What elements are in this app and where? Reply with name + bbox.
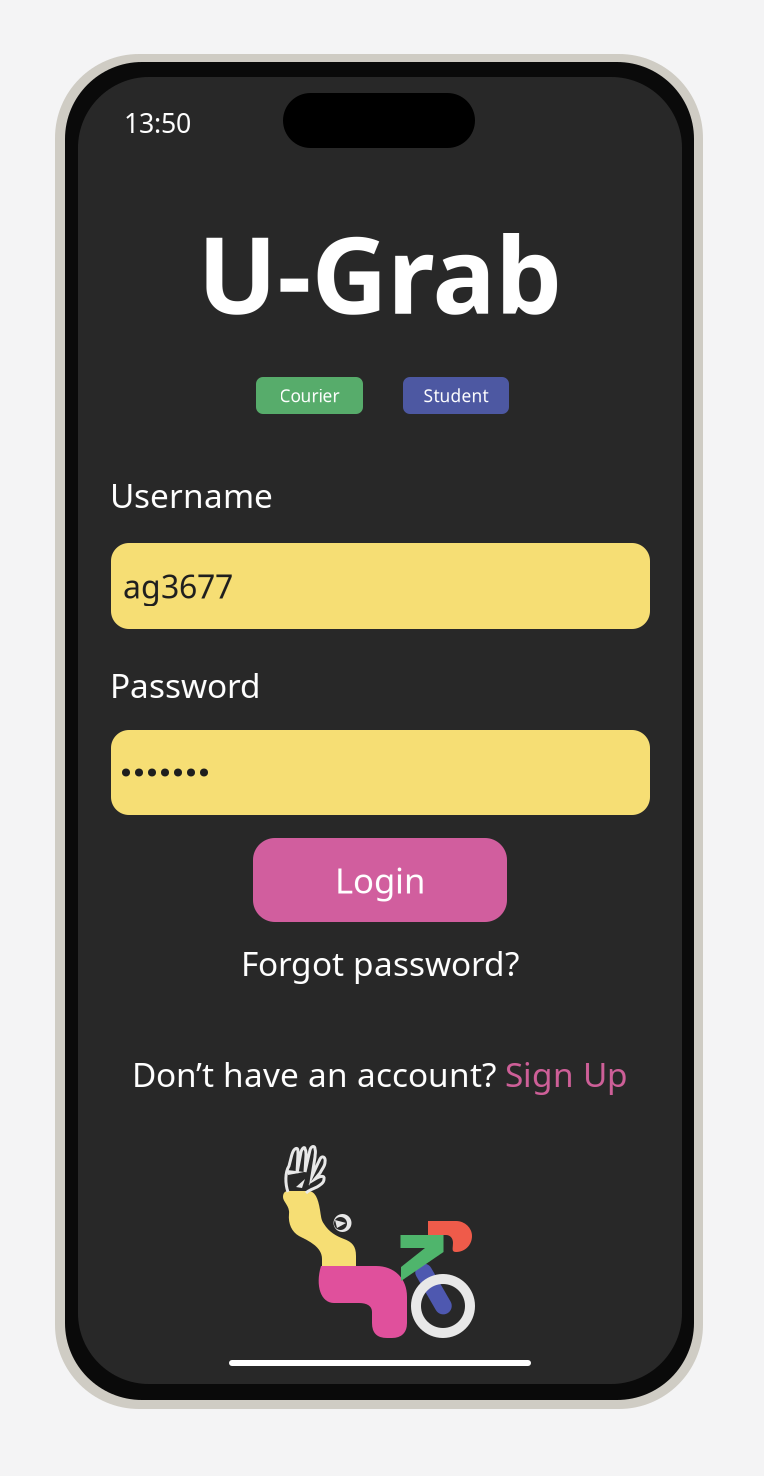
button[interactable]: Student <box>403 377 509 414</box>
staticText: 13:50 <box>124 105 191 140</box>
staticText: Don’t have an account? <box>132 1052 505 1096</box>
staticText: Student <box>423 384 488 407</box>
staticText: Password <box>110 663 261 707</box>
button[interactable]: Courier <box>256 377 363 414</box>
button[interactable]: Sign Up <box>505 1052 628 1096</box>
staticText: Courier <box>279 384 339 407</box>
button[interactable]: Forgot password? <box>78 941 682 985</box>
staticText: U-Grab <box>197 203 562 343</box>
staticText: Sign Up <box>505 1052 628 1096</box>
staticText: Login <box>335 857 425 903</box>
staticText: Forgot password? <box>241 941 519 985</box>
staticText: ag3677 <box>123 565 233 607</box>
staticText: Username <box>110 473 273 517</box>
button[interactable]: Login <box>253 838 507 922</box>
